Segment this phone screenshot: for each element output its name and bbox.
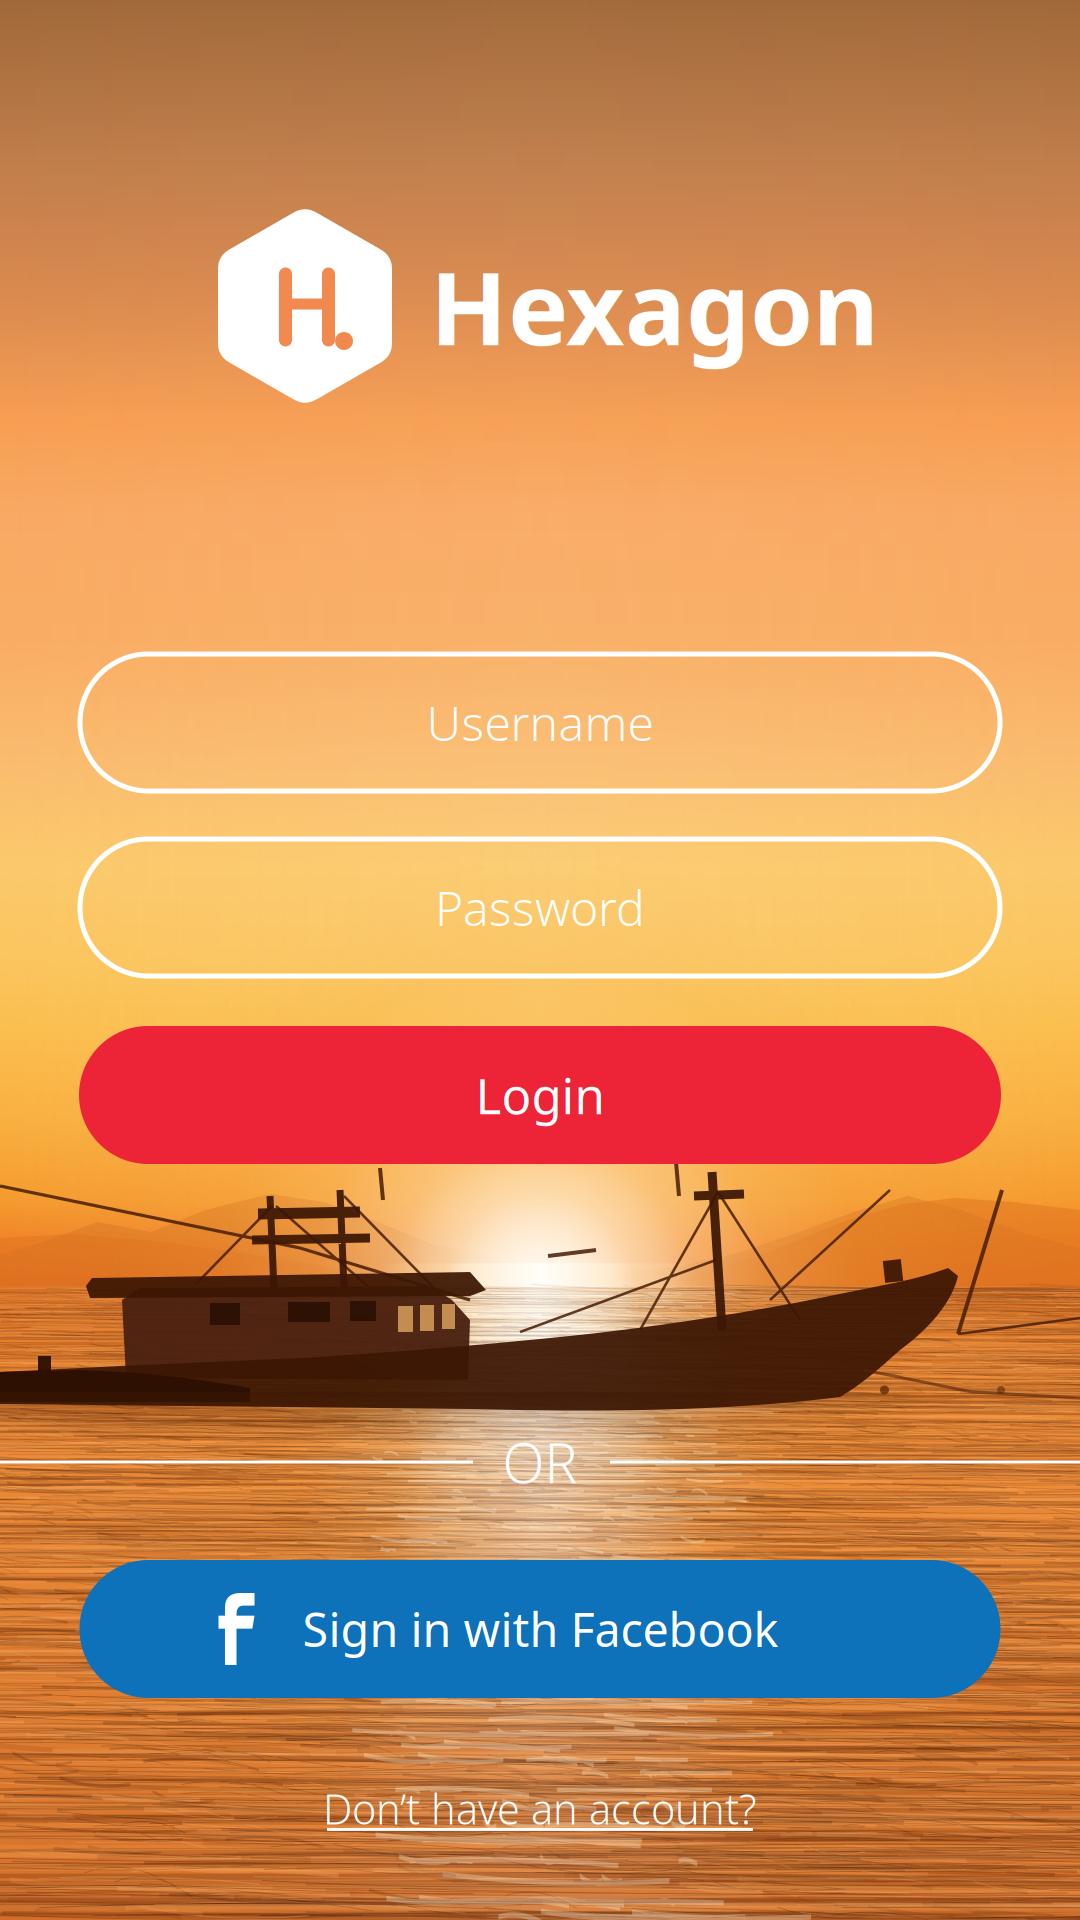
button[interactable]: Username	[80, 654, 1000, 791]
staticText: Username	[426, 691, 653, 754]
staticText: Don’t have an account?	[323, 1781, 757, 1836]
staticText: Hexagon	[430, 239, 879, 373]
staticText: OR	[502, 1426, 577, 1498]
button[interactable]: Don’t have an account?	[323, 1781, 757, 1831]
button[interactable]: Sign in with Facebook	[79, 1560, 1000, 1698]
button[interactable]: Login	[79, 1026, 1001, 1164]
staticText: Password	[435, 876, 645, 939]
staticText: Login	[475, 1062, 604, 1128]
staticText: Sign in with Facebook	[302, 1598, 778, 1660]
button[interactable]: Password	[80, 839, 1000, 976]
